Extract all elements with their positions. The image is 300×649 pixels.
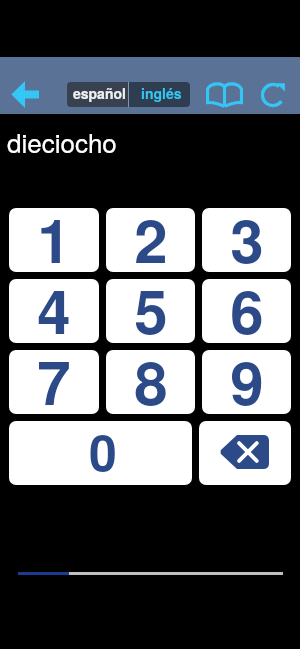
button[interactable]: Back [6,75,44,113]
button[interactable]: 2 [106,208,195,272]
button[interactable]: Backspace [199,421,291,485]
button[interactable]: 3 [202,208,291,272]
button[interactable]: 5 [106,279,195,343]
button[interactable]: 9 [202,350,291,414]
staticText: 4 [37,279,71,343]
button[interactable]: 7 [9,350,99,414]
staticText: inglés [141,83,182,103]
button[interactable]: Dictionary [201,74,247,114]
button[interactable]: inglés [129,82,190,107]
button[interactable]: 1 [9,208,99,272]
button[interactable]: 4 [9,279,99,343]
staticText: dieciocho [7,123,117,160]
button[interactable]: 0 [9,421,192,485]
staticText: 9 [230,350,264,414]
button[interactable]: 8 [106,350,195,414]
button[interactable]: Refresh [250,74,296,114]
staticText: 5 [134,279,168,343]
button[interactable]: 6 [202,279,291,343]
staticText: 6 [230,279,264,343]
staticText: 2 [134,208,168,272]
staticText: 1 [37,208,71,272]
staticText: 7 [37,350,71,414]
staticText: 8 [134,350,168,414]
button[interactable]: español [67,82,128,107]
staticText: español [73,83,126,103]
staticText: 3 [230,208,264,272]
staticText: 0 [89,421,117,485]
